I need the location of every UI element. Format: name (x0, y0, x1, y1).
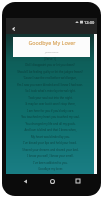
staticText: You touched my heart you touched my soul… (21, 115, 80, 119)
staticText: Yes I saw you were blinded and I knew I … (17, 83, 83, 87)
button[interactable]: Recents (71, 174, 85, 188)
staticText: James Blunt (45, 50, 59, 53)
staticText: Did I disappoint you or let you down? (25, 63, 75, 67)
staticText: Goodbye My Lover (28, 39, 76, 46)
button[interactable]: Home (45, 174, 59, 188)
staticText: And love is blind and that I knew when, (24, 128, 77, 132)
staticText: Should I be feeling guilty or let the ju… (17, 70, 83, 74)
staticText: I've been addicted to you. (33, 161, 68, 165)
staticText: I am here for you if you'd only care. (27, 109, 74, 113)
staticText: You changed my life and all my goals. (25, 122, 76, 126)
staticText: I know you well, I know your smell. (27, 154, 74, 158)
staticText: It may be over but it won't stop there, (25, 102, 76, 106)
staticText: Took your soul out into the night. (28, 96, 73, 100)
staticText: 'Cause I saw the end before we'd begun, (23, 76, 77, 80)
staticText: So I took what's mine by eternal right. (25, 89, 76, 93)
staticText: I've kissed your lips and held your head… (23, 141, 77, 145)
staticText: Goodbye my lover. (38, 167, 63, 171)
staticText: [Verse 1] (44, 57, 56, 61)
staticText: My heart was blinded by you. (31, 135, 70, 139)
staticText: Shared your dreams and shared your bed. (22, 148, 79, 152)
staticText: 12:00 (84, 20, 95, 25)
button[interactable]: Back (10, 25, 18, 33)
button[interactable]: Back (18, 174, 32, 188)
